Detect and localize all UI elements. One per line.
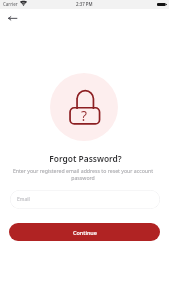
staticText: 2:37 PM (76, 1, 93, 7)
staticText: Enter your registered email address to r… (7, 167, 159, 181)
staticText: Email (17, 196, 30, 203)
staticText: Carrier (3, 1, 18, 7)
staticText: ? (81, 106, 87, 125)
button[interactable]: Back (3, 11, 21, 27)
staticText: Forgot Password? (1, 153, 169, 164)
button[interactable]: Email (10, 190, 160, 209)
staticText: Continue (73, 229, 97, 236)
button[interactable]: Continue (9, 223, 160, 241)
